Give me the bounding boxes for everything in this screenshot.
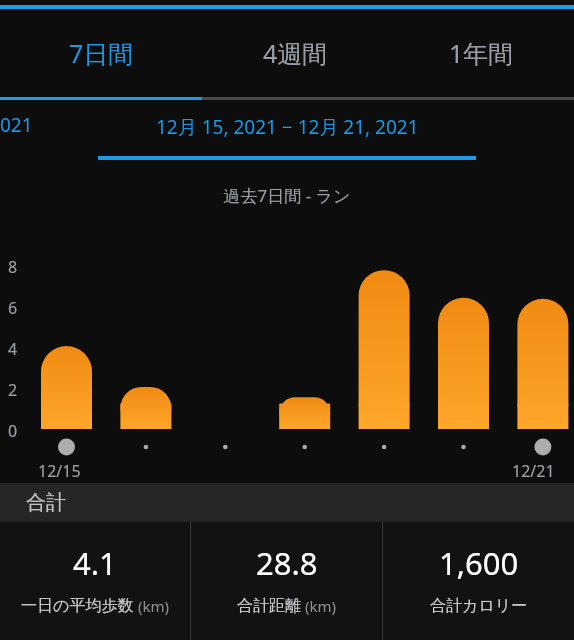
staticText: 4 xyxy=(8,338,18,360)
button[interactable]: 28.8 xyxy=(191,522,382,640)
staticText: 1年間 xyxy=(449,36,514,70)
staticText: 合計距離 xyxy=(237,596,301,616)
staticText: 4.1 xyxy=(73,542,117,584)
button[interactable]: 4.1 xyxy=(0,522,190,640)
staticText: 1,600 xyxy=(439,542,519,584)
staticText: 過去7日間 - ラン xyxy=(0,184,574,207)
staticText: 4週間 xyxy=(263,36,328,70)
button[interactable]: 1,600 xyxy=(383,522,574,640)
button[interactable]: 4週間 xyxy=(202,9,388,97)
staticText: 一日の平均歩数 xyxy=(21,596,134,616)
staticText: 2 xyxy=(8,379,18,401)
staticText: 合計 xyxy=(26,490,66,515)
button[interactable]: 021 xyxy=(0,100,574,162)
staticText: 021 xyxy=(0,112,33,138)
staticText: (km) xyxy=(301,596,336,616)
staticText: (km) xyxy=(134,596,169,616)
staticText: 12/21 xyxy=(512,460,555,482)
staticText: 6 xyxy=(8,297,18,319)
staticText: 28.8 xyxy=(256,542,318,584)
staticText: 8 xyxy=(8,256,18,278)
staticText: 0 xyxy=(8,420,18,442)
staticText: 7日間 xyxy=(69,36,134,70)
button[interactable]: 7日間 xyxy=(0,9,202,97)
staticText: 合計カロリー xyxy=(430,596,528,616)
button[interactable]: 1年間 xyxy=(388,9,574,97)
staticText: 12月 15, 2021 − 12月 21, 2021 xyxy=(156,114,419,140)
staticText: 12/15 xyxy=(38,460,81,482)
